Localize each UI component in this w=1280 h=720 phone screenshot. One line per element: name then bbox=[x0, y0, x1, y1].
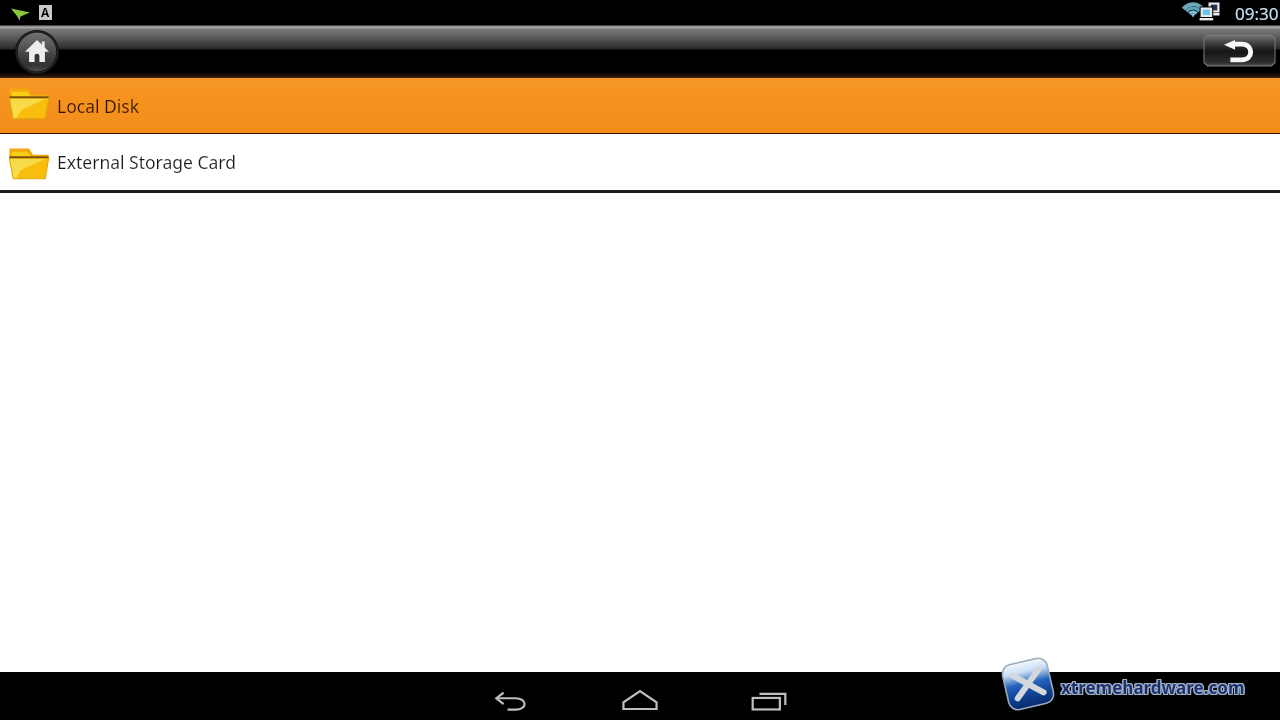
staticText: xtremehardware.com bbox=[1062, 677, 1246, 700]
staticText: xtremehardware.com bbox=[1061, 677, 1245, 700]
button[interactable]: Home bbox=[616, 681, 664, 719]
button[interactable]: Back bbox=[1204, 35, 1275, 66]
staticText: Local Disk bbox=[57, 94, 140, 118]
staticText: A bbox=[41, 4, 50, 20]
staticText: xtremehardware.com bbox=[1060, 677, 1244, 700]
button[interactable]: Home bbox=[15, 30, 59, 74]
staticText: xtremehardware.com bbox=[1062, 675, 1246, 698]
staticText: xtremehardware.com bbox=[1062, 676, 1246, 699]
staticText: xtremehardware.com bbox=[1060, 675, 1244, 698]
button[interactable]: Local Disk bbox=[0, 78, 1280, 133]
staticText: xtremehardware.com bbox=[1061, 675, 1245, 698]
button[interactable]: Back bbox=[487, 682, 536, 720]
staticText: xtremehardware.com bbox=[1061, 676, 1245, 699]
staticText: External Storage Card bbox=[57, 150, 237, 174]
staticText: 09:30 bbox=[1235, 2, 1279, 25]
staticText: xtremehardware.com bbox=[1060, 676, 1244, 699]
button[interactable]: External Storage Card bbox=[0, 134, 1280, 190]
button[interactable]: Recent apps bbox=[745, 682, 793, 720]
